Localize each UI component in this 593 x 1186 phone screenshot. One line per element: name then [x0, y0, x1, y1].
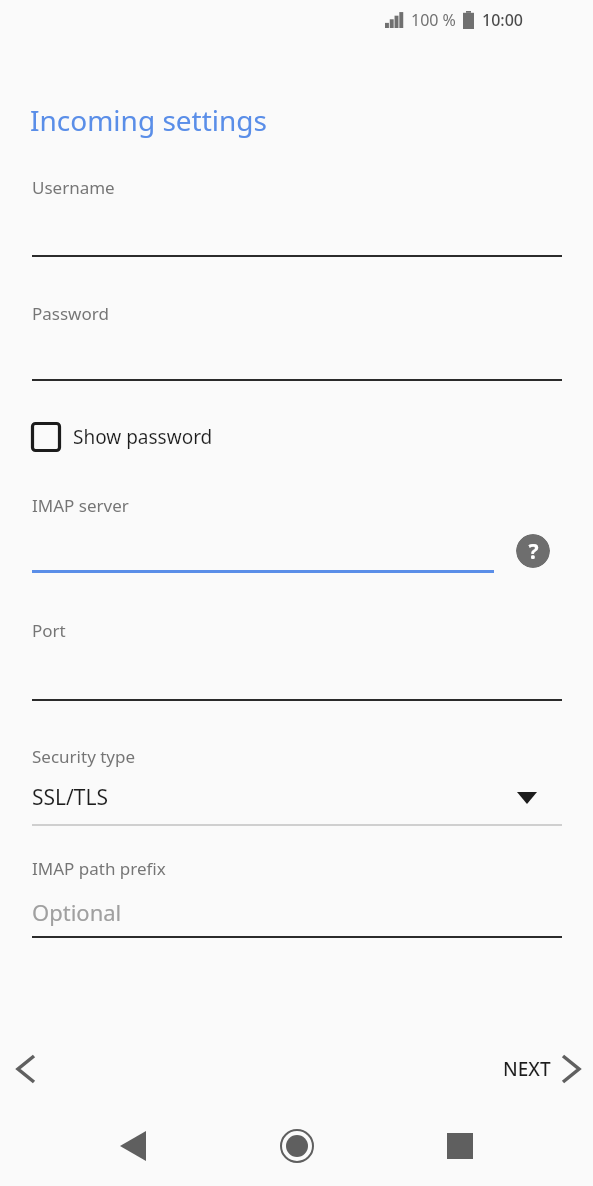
button[interactable]: Home — [273, 1122, 321, 1170]
button[interactable]: Show password — [31, 416, 213, 458]
staticText: Optional — [32, 897, 122, 927]
staticText: Username — [32, 176, 115, 199]
staticText: Port — [32, 619, 66, 642]
button[interactable] — [32, 662, 562, 712]
button[interactable]: Recent apps — [436, 1122, 484, 1170]
staticText: IMAP path prefix — [32, 857, 166, 880]
staticText: Security type — [32, 745, 136, 768]
staticText: ? — [528, 537, 539, 566]
staticText: 100 % — [411, 9, 456, 31]
button[interactable] — [32, 220, 562, 276]
button[interactable]: Optional — [32, 893, 562, 939]
staticText: Incoming settings — [30, 101, 267, 139]
button[interactable]: Security type — [32, 742, 562, 824]
button[interactable]: Back — [2, 1045, 50, 1093]
staticText: Password — [32, 302, 109, 325]
staticText: NEXT — [503, 1056, 551, 1082]
button[interactable]: NEXT — [503, 1056, 579, 1082]
staticText: 10:00 — [482, 9, 523, 31]
button[interactable] — [32, 345, 562, 401]
button[interactable] — [32, 530, 494, 580]
staticText: SSL/TLS — [32, 783, 109, 812]
staticText: Show password — [73, 424, 213, 450]
button[interactable]: Back — [109, 1122, 157, 1170]
button[interactable]: Help — [516, 534, 550, 568]
staticText: IMAP server — [32, 494, 129, 517]
